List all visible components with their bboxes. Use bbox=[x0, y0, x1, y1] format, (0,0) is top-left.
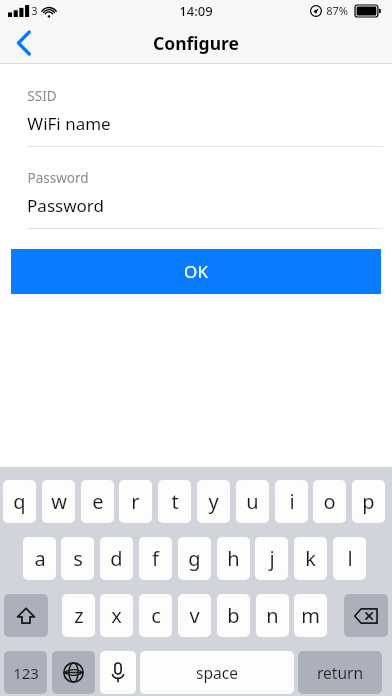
button[interactable]: Shift bbox=[4, 594, 48, 637]
button[interactable]: a bbox=[23, 537, 56, 580]
staticText: c bbox=[151, 602, 161, 629]
button[interactable]: f bbox=[139, 537, 172, 580]
button[interactable]: y bbox=[197, 480, 230, 523]
staticText: v bbox=[189, 602, 200, 629]
staticText: q bbox=[13, 488, 26, 515]
button[interactable]: Backspace bbox=[344, 594, 388, 637]
staticText: r bbox=[131, 488, 140, 515]
button[interactable]: Change keyboard bbox=[52, 651, 95, 694]
button[interactable]: OK bbox=[11, 249, 381, 294]
staticText: o bbox=[323, 488, 336, 515]
button[interactable]: v bbox=[178, 594, 211, 637]
staticText: return bbox=[317, 662, 363, 683]
button[interactable]: x bbox=[100, 594, 133, 637]
staticText: k bbox=[305, 545, 316, 572]
button[interactable]: w bbox=[42, 480, 75, 523]
staticText: Configure bbox=[153, 31, 239, 55]
staticText: u bbox=[246, 488, 259, 515]
staticText: m bbox=[301, 602, 320, 629]
staticText: x bbox=[111, 602, 122, 629]
button[interactable]: Dictate bbox=[100, 651, 136, 694]
button[interactable]: z bbox=[62, 594, 95, 637]
button[interactable]: p bbox=[352, 480, 385, 523]
button[interactable]: q bbox=[3, 480, 36, 523]
button[interactable]: m bbox=[294, 594, 327, 637]
staticText: t bbox=[171, 488, 179, 515]
staticText: 14:09 bbox=[179, 2, 213, 20]
staticText: z bbox=[74, 602, 84, 629]
button[interactable]: Back bbox=[2, 22, 46, 64]
staticText: a bbox=[34, 545, 46, 572]
staticText: h bbox=[227, 545, 240, 572]
staticText: 123 bbox=[13, 663, 39, 683]
staticText: Password bbox=[27, 194, 104, 217]
button[interactable]: return bbox=[298, 651, 382, 694]
button[interactable]: b bbox=[217, 594, 250, 637]
staticText: g bbox=[188, 545, 201, 572]
staticText: e bbox=[92, 488, 104, 515]
button[interactable]: d bbox=[100, 537, 133, 580]
button[interactable]: i bbox=[275, 480, 308, 523]
staticText: w bbox=[51, 488, 67, 515]
staticText: p bbox=[362, 488, 375, 515]
button[interactable]: j bbox=[255, 537, 288, 580]
button[interactable]: r bbox=[119, 480, 152, 523]
button[interactable]: k bbox=[294, 537, 327, 580]
button[interactable]: SSID bbox=[0, 87, 392, 147]
button[interactable]: c bbox=[139, 594, 172, 637]
button[interactable]: s bbox=[61, 537, 94, 580]
button[interactable]: h bbox=[217, 537, 250, 580]
staticText: l bbox=[347, 545, 353, 572]
staticText: y bbox=[208, 488, 219, 515]
button[interactable]: g bbox=[178, 537, 211, 580]
staticText: b bbox=[227, 602, 240, 629]
staticText: SSID bbox=[27, 87, 57, 105]
staticText: n bbox=[266, 602, 279, 629]
button[interactable]: Numbers bbox=[4, 651, 47, 694]
staticText: i bbox=[289, 488, 295, 515]
button[interactable]: space bbox=[140, 651, 294, 694]
button[interactable]: o bbox=[313, 480, 346, 523]
button[interactable]: t bbox=[158, 480, 191, 523]
staticText: d bbox=[110, 545, 123, 572]
staticText: j bbox=[269, 545, 275, 572]
staticText: space bbox=[196, 662, 238, 683]
button[interactable]: l bbox=[333, 537, 366, 580]
staticText: Password bbox=[27, 169, 89, 187]
staticText: 3 bbox=[31, 3, 38, 18]
button[interactable]: e bbox=[81, 480, 114, 523]
staticText: OK bbox=[184, 260, 208, 283]
staticText: f bbox=[152, 545, 159, 572]
button[interactable]: u bbox=[236, 480, 269, 523]
button[interactable]: n bbox=[256, 594, 289, 637]
button[interactable]: Password bbox=[0, 169, 392, 229]
staticText: s bbox=[73, 545, 83, 572]
staticText: WiFi name bbox=[27, 112, 111, 135]
staticText: 87% bbox=[326, 3, 348, 18]
